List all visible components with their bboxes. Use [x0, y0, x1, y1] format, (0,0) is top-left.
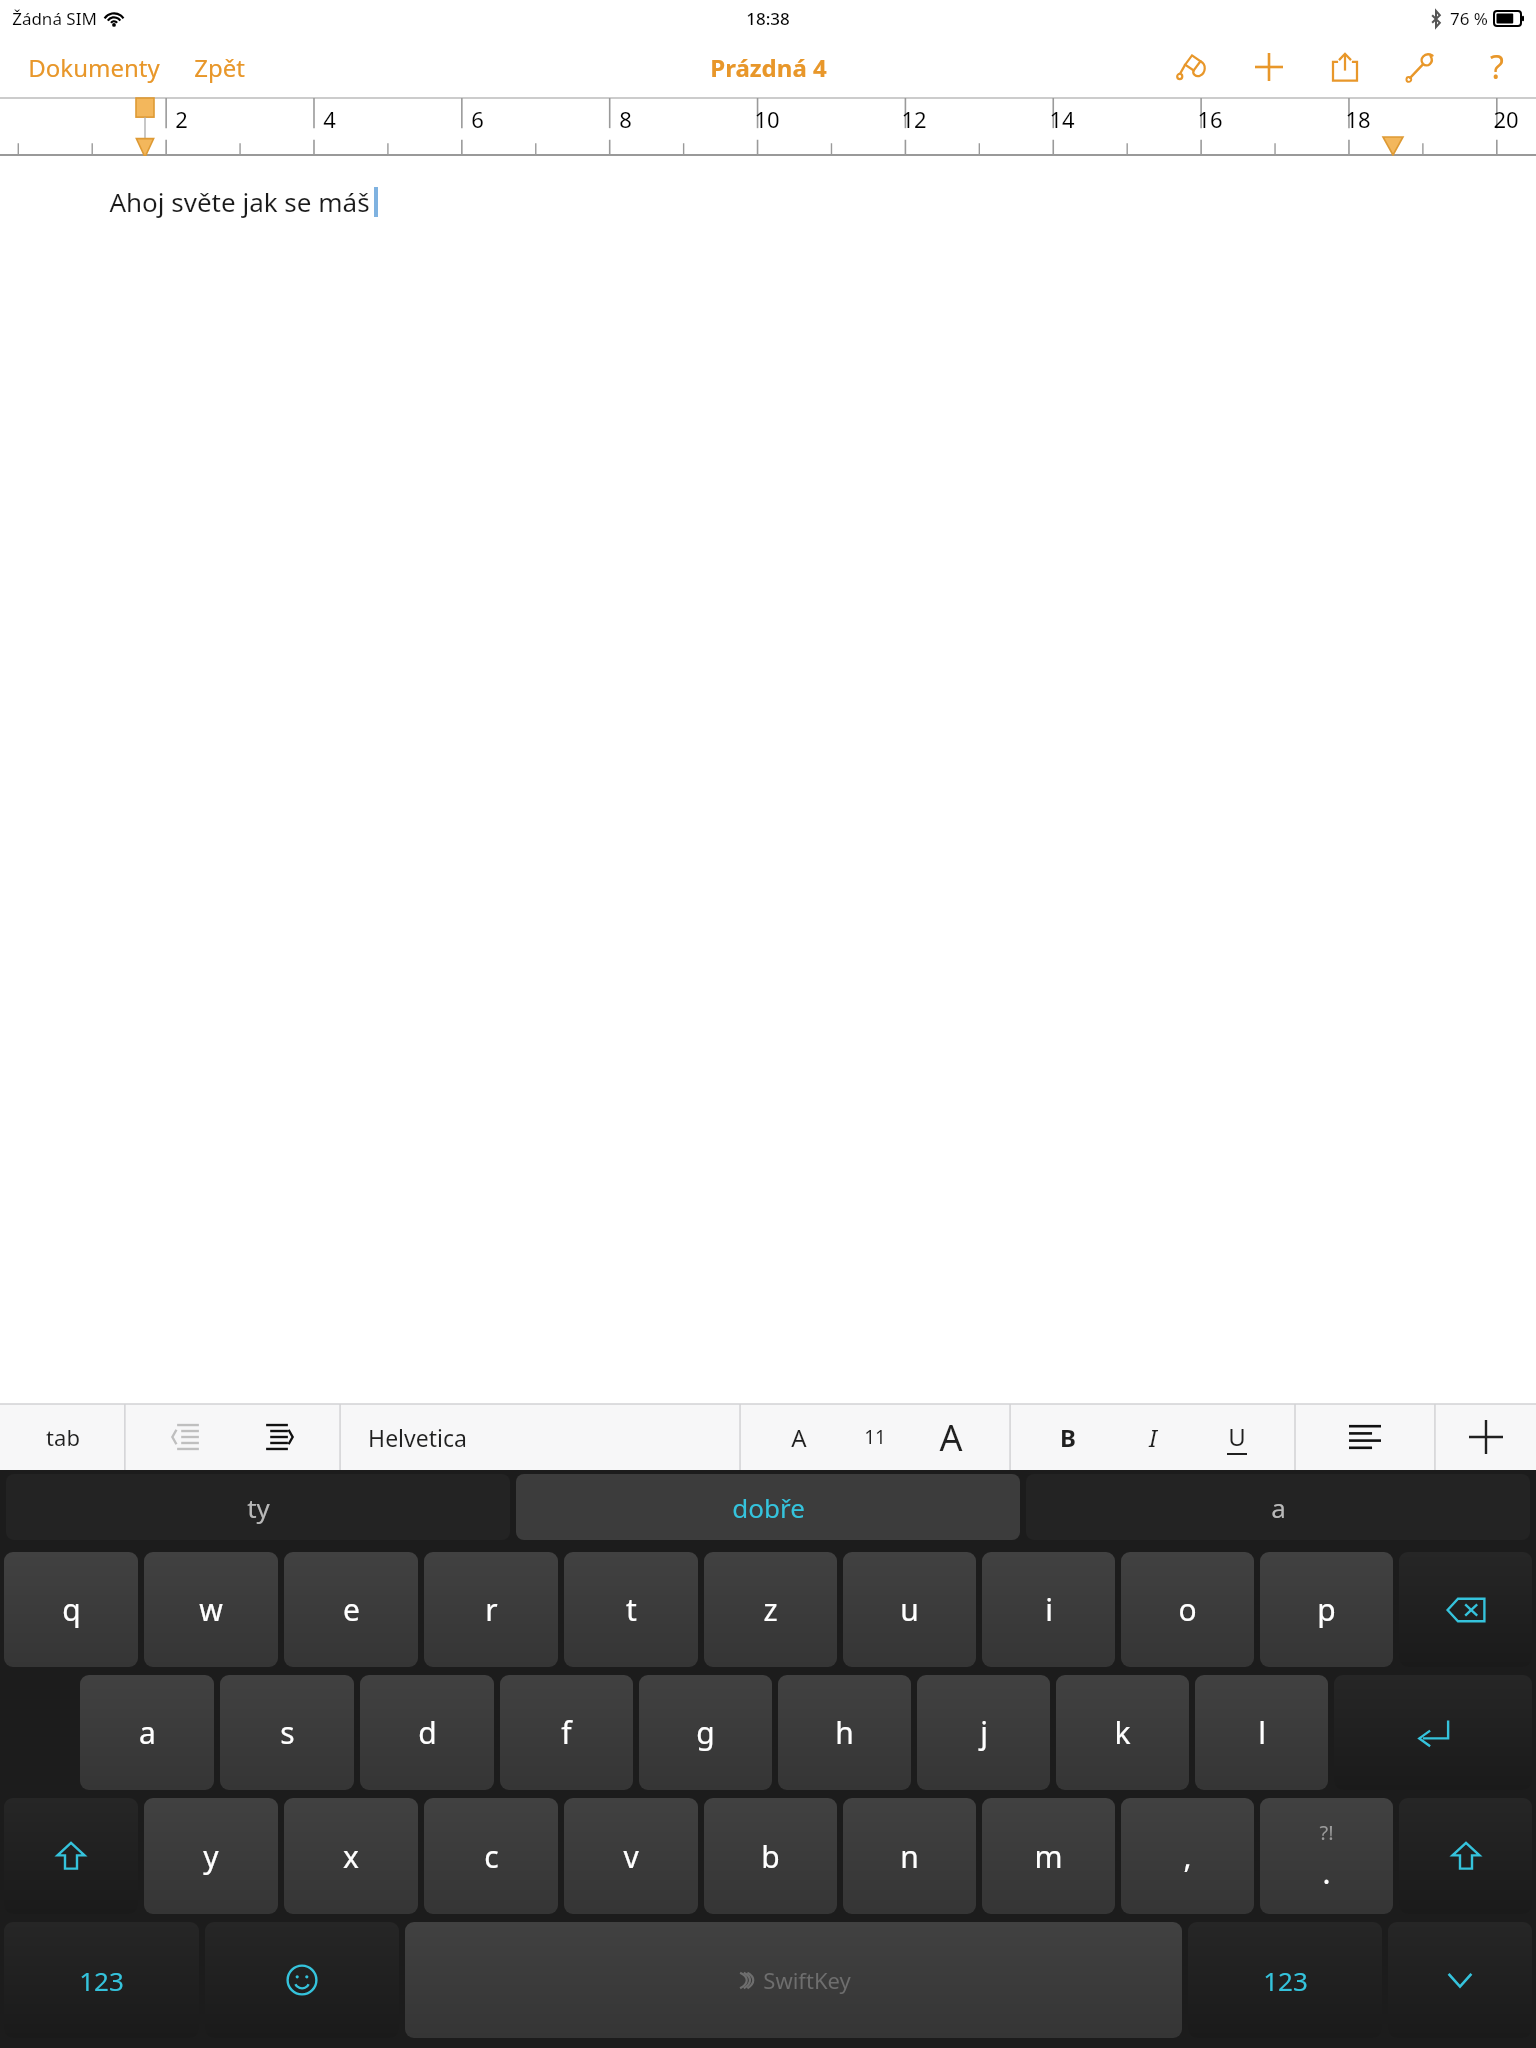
staticText: j	[980, 1712, 988, 1753]
button[interactable]: s	[220, 1675, 354, 1790]
button[interactable]: g	[639, 1675, 772, 1790]
button[interactable]: Backspace	[1399, 1552, 1532, 1667]
button[interactable]: Insert	[1246, 44, 1292, 90]
button[interactable]: b	[704, 1798, 837, 1914]
staticText: q	[62, 1589, 81, 1630]
button[interactable]: r	[424, 1552, 558, 1667]
staticText: ?!	[1319, 1819, 1334, 1846]
button[interactable]: Helvetica	[340, 1404, 740, 1470]
staticText: A	[791, 1421, 807, 1454]
staticText: 10	[754, 104, 780, 134]
staticText: a	[1271, 1490, 1286, 1525]
button[interactable]: i	[982, 1552, 1115, 1667]
button[interactable]: Shift	[1399, 1798, 1532, 1914]
button[interactable]: Alignment	[1295, 1404, 1435, 1470]
staticText: 12	[901, 104, 927, 134]
button[interactable]: k	[1056, 1675, 1189, 1790]
staticText: n	[900, 1836, 919, 1877]
staticText: d	[418, 1712, 437, 1753]
staticText: B	[1060, 1421, 1076, 1454]
button[interactable]: Space	[405, 1922, 1182, 2038]
button[interactable]: z	[704, 1552, 837, 1667]
staticText: A	[939, 1413, 963, 1462]
button[interactable]: y	[144, 1798, 278, 1914]
button[interactable]: Increase size	[925, 1411, 977, 1463]
staticText: ,	[1183, 1836, 1192, 1877]
staticText: x	[343, 1836, 359, 1877]
button[interactable]: q	[4, 1552, 138, 1667]
staticText: ?	[1490, 45, 1504, 89]
staticText: 8	[619, 104, 632, 134]
staticText: 14	[1049, 104, 1075, 134]
staticText: SwiftKey	[763, 1965, 851, 1995]
button[interactable]: Underline	[1211, 1411, 1263, 1463]
button[interactable]: Numbers	[4, 1922, 199, 2038]
staticText: 6	[471, 104, 484, 134]
button[interactable]: p	[1260, 1552, 1393, 1667]
staticText: U	[1228, 1420, 1246, 1453]
staticText: u	[900, 1589, 919, 1630]
button[interactable]: l	[1195, 1675, 1328, 1790]
staticText: k	[1114, 1712, 1131, 1753]
button[interactable]: j	[917, 1675, 1050, 1790]
staticText: z	[763, 1589, 778, 1630]
button[interactable]: Dokumenty	[22, 45, 166, 90]
button[interactable]: Numbers	[1188, 1922, 1382, 2038]
button[interactable]: Emoji	[205, 1922, 399, 2038]
button[interactable]: tab	[0, 1404, 125, 1470]
button[interactable]: a	[80, 1675, 214, 1790]
button[interactable]: Hide keyboard	[1388, 1922, 1532, 2038]
button[interactable]: Decrease indent	[162, 1411, 214, 1463]
button[interactable]: m	[982, 1798, 1115, 1914]
button[interactable]: More	[1435, 1404, 1536, 1470]
button[interactable]: ty	[6, 1474, 510, 1540]
staticText: ty	[247, 1490, 270, 1525]
staticText: h	[835, 1712, 854, 1753]
staticText: .	[1322, 1852, 1331, 1893]
staticText: 11	[864, 1424, 886, 1450]
button[interactable]: a	[1026, 1474, 1530, 1540]
staticText: e	[343, 1589, 360, 1630]
button[interactable]: 11	[858, 1418, 892, 1456]
button[interactable]: c	[424, 1798, 558, 1914]
button[interactable]: I	[1127, 1411, 1179, 1463]
staticText: c	[484, 1836, 499, 1877]
button[interactable]: Zpět	[188, 45, 251, 90]
button[interactable]: h	[778, 1675, 911, 1790]
button[interactable]: Enter	[1334, 1675, 1532, 1790]
button[interactable]: t	[564, 1552, 698, 1667]
button[interactable]: Increase indent	[251, 1411, 303, 1463]
staticText: a	[139, 1712, 156, 1753]
button[interactable]: Format painter	[1170, 44, 1216, 90]
button[interactable]: v	[564, 1798, 698, 1914]
staticText: Prázdná 4	[710, 51, 827, 84]
staticText: 20	[1493, 104, 1519, 134]
button[interactable]: Decrease size	[773, 1411, 825, 1463]
button[interactable]: e	[284, 1552, 418, 1667]
button[interactable]: x	[284, 1798, 418, 1914]
staticText: 76 %	[1450, 7, 1488, 30]
button[interactable]: n	[843, 1798, 976, 1914]
button[interactable]: Help	[1474, 44, 1520, 90]
button[interactable]: d	[360, 1675, 494, 1790]
staticText: b	[761, 1836, 780, 1877]
button[interactable]: f	[500, 1675, 633, 1790]
button[interactable]: ,	[1121, 1798, 1254, 1914]
staticText: s	[280, 1712, 295, 1753]
staticText: t	[626, 1589, 637, 1630]
staticText: 18	[1345, 104, 1371, 134]
button[interactable]: u	[843, 1552, 976, 1667]
button[interactable]: Settings	[1398, 44, 1444, 90]
button[interactable]: Shift	[4, 1798, 138, 1914]
button[interactable]: B	[1042, 1411, 1094, 1463]
staticText: 123	[1263, 1963, 1308, 1998]
staticText: r	[485, 1589, 498, 1630]
staticText: 4	[323, 104, 336, 134]
button[interactable]: dobře	[516, 1474, 1020, 1540]
button[interactable]: Share	[1322, 44, 1368, 90]
staticText: 123	[79, 1963, 124, 1998]
button[interactable]: o	[1121, 1552, 1254, 1667]
staticText: Helvetica	[368, 1422, 467, 1453]
button[interactable]: w	[144, 1552, 278, 1667]
button[interactable]: ?!	[1260, 1798, 1393, 1914]
